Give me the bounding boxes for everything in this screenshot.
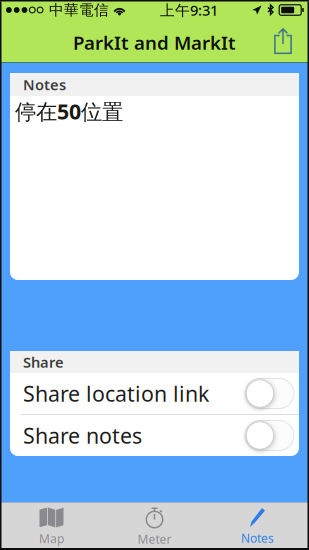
staticText: Meter [137, 531, 171, 547]
button[interactable]: Map [0, 503, 103, 550]
button[interactable]: Share location link [10, 373, 299, 414]
button[interactable]: Notes [206, 503, 309, 550]
staticText: 中華電信 [49, 1, 109, 19]
staticText: Notes [241, 530, 274, 546]
button[interactable]: Meter [103, 503, 206, 550]
button[interactable]: Share notes [10, 415, 299, 456]
staticText: Map [39, 530, 64, 546]
staticText: ParkIt and MarkIt [73, 30, 236, 55]
staticText: 上午9:31 [160, 0, 218, 20]
staticText: Share [23, 352, 64, 372]
staticText: 停在50位置 [15, 97, 123, 125]
staticText: Notes [23, 75, 66, 94]
button[interactable]: Share [262, 21, 309, 61]
staticText: Share location link [23, 379, 209, 408]
staticText: Share notes [23, 421, 142, 450]
